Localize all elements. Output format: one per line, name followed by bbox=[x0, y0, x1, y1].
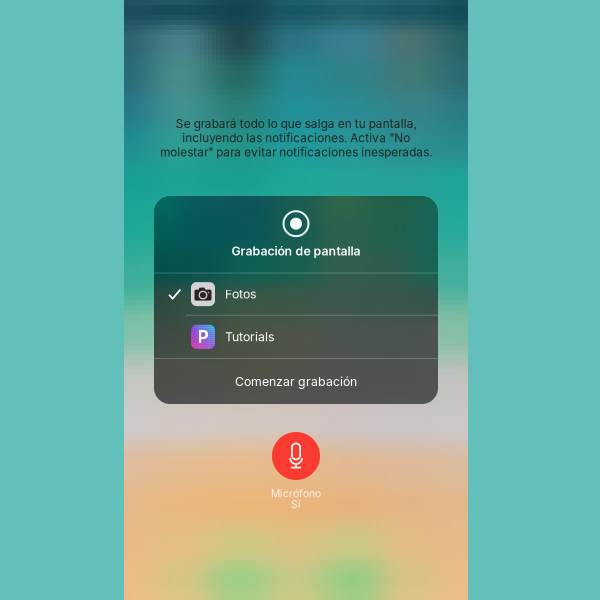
button[interactable]: Micrófono bbox=[272, 432, 320, 480]
button[interactable]: Comenzar grabación bbox=[154, 359, 438, 404]
button[interactable]: Fotos bbox=[154, 273, 438, 315]
staticText: Micrófono bbox=[271, 487, 321, 500]
staticText: Tutorials bbox=[225, 329, 274, 344]
staticText: Se grabará todo lo que salga en tu panta… bbox=[160, 117, 432, 159]
staticText: Grabación de pantalla bbox=[231, 244, 360, 258]
staticText: Fotos bbox=[225, 287, 256, 301]
staticText: Comenzar grabación bbox=[235, 374, 357, 389]
button[interactable]: P bbox=[154, 316, 438, 358]
staticText: Sí bbox=[291, 498, 301, 511]
staticText: P bbox=[197, 326, 208, 347]
